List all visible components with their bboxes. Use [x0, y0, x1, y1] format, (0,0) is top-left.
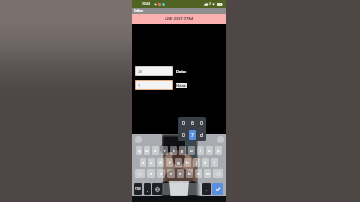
staticText: p: [217, 148, 220, 154]
button[interactable]: 0: [198, 118, 205, 128]
staticText: .: [206, 187, 207, 192]
staticText: u: [190, 148, 193, 154]
staticText: y: [181, 148, 184, 154]
button[interactable]: q: [136, 146, 142, 155]
staticText: v: [179, 171, 182, 177]
button[interactable]: u: [188, 146, 195, 155]
button[interactable]: i: [197, 146, 204, 155]
button[interactable]: Shift: [135, 169, 145, 178]
button[interactable]: 6: [189, 118, 196, 128]
button[interactable]: e: [152, 146, 159, 155]
staticText: (24) 3351 7764: [165, 16, 194, 22]
button[interactable]: 1: [136, 81, 172, 89]
button[interactable]: v: [177, 169, 184, 178]
button[interactable]: a: [140, 158, 146, 167]
staticText: 10:24: [142, 2, 151, 6]
button[interactable]: 0: [179, 118, 187, 128]
staticText: 1: [138, 83, 141, 88]
button[interactable]: Enter: [212, 183, 223, 195]
staticText: r: [164, 148, 166, 154]
staticText: 0: [182, 132, 185, 139]
button[interactable]: Comma: [144, 183, 151, 195]
button[interactable]: 0: [179, 130, 187, 140]
staticText: ,: [147, 187, 148, 192]
button[interactable]: o: [206, 146, 213, 155]
button[interactable]: d: [198, 130, 205, 140]
button[interactable]: Editar: [132, 8, 226, 14]
staticText: j: [196, 160, 198, 166]
staticText: l: [214, 160, 216, 166]
staticText: a: [142, 160, 145, 166]
staticText: ?123: [135, 187, 141, 191]
staticText: 0: [200, 120, 203, 127]
button[interactable]: w: [144, 146, 150, 155]
staticText: k: [204, 160, 207, 166]
staticText: q: [138, 148, 141, 154]
button[interactable]: c: [167, 169, 175, 178]
button[interactable]: l: [211, 158, 218, 167]
button[interactable]: Space: [163, 183, 202, 195]
button[interactable]: n: [195, 169, 202, 178]
button[interactable]: b: [186, 169, 193, 178]
button[interactable]: Symbols: [134, 183, 142, 195]
button[interactable]: r: [161, 146, 168, 155]
button[interactable]: Settings: [217, 136, 224, 143]
staticText: 3: [209, 2, 211, 6]
button[interactable]: j: [193, 158, 200, 167]
button[interactable]: (24) 3351 7764: [132, 14, 226, 24]
staticText: s: [150, 160, 153, 166]
button[interactable]: m: [204, 169, 211, 178]
button[interactable]: x: [157, 169, 165, 178]
button[interactable]: f: [166, 158, 173, 167]
staticText: 28: [138, 69, 143, 74]
staticText: 7: [191, 132, 194, 139]
button[interactable]: Backspace: [213, 169, 223, 178]
staticText: d: [159, 160, 162, 166]
button[interactable]: z: [147, 169, 155, 178]
button[interactable]: s: [148, 158, 155, 167]
staticText: Data:: [176, 69, 187, 74]
staticText: m: [206, 171, 210, 177]
button[interactable]: 28: [136, 67, 172, 75]
staticText: w: [145, 148, 149, 154]
button[interactable]: 7: [189, 130, 196, 140]
button[interactable]: Period: [202, 183, 211, 195]
staticText: Hora:: [176, 83, 187, 88]
button[interactable]: Emoji: [135, 136, 142, 143]
button[interactable]: g: [175, 158, 182, 167]
staticText: i: [200, 148, 202, 154]
button[interactable]: Language: [152, 183, 162, 195]
staticText: b: [188, 171, 191, 177]
staticText: d: [200, 132, 204, 139]
staticText: z: [150, 171, 152, 177]
staticText: Editar: [134, 9, 144, 13]
staticText: t: [173, 148, 175, 154]
button[interactable]: d: [157, 158, 164, 167]
staticText: f: [169, 160, 171, 166]
staticText: 6: [191, 120, 194, 127]
staticText: e: [154, 148, 157, 154]
button[interactable]: k: [202, 158, 209, 167]
button[interactable]: t: [170, 146, 177, 155]
staticText: 0: [182, 120, 185, 127]
staticText: n: [197, 171, 200, 177]
staticText: h: [186, 160, 189, 166]
staticText: o: [208, 148, 211, 154]
button[interactable]: h: [184, 158, 191, 167]
button[interactable]: y: [179, 146, 186, 155]
staticText: x: [160, 171, 163, 177]
staticText: c: [170, 171, 173, 177]
button[interactable]: p: [215, 146, 222, 155]
staticText: g: [177, 160, 180, 166]
